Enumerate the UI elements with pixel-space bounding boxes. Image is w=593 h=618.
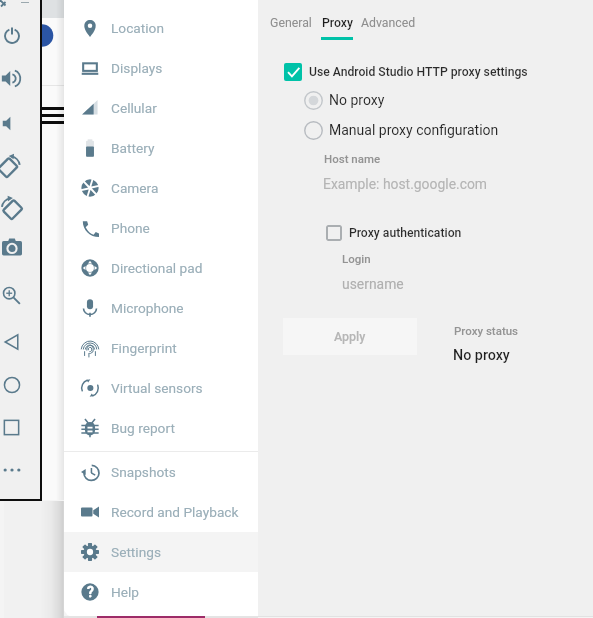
button[interactable]: Proxy — [322, 16, 354, 38]
staticText: Apply — [334, 329, 366, 344]
staticText: Proxy authentication — [349, 226, 462, 240]
button[interactable]: Volume up — [0, 62, 23, 94]
staticText: Proxy — [322, 16, 354, 30]
button[interactable]: Snapshots — [64, 452, 258, 492]
staticText: Fingerprint — [111, 340, 177, 356]
button[interactable]: ? — [64, 572, 258, 612]
staticText: General — [270, 16, 312, 30]
button[interactable]: Camera — [64, 168, 258, 208]
button[interactable]: Phone — [64, 208, 258, 248]
staticText: Virtual sensors — [111, 380, 203, 396]
staticText: Location — [111, 20, 164, 36]
button[interactable]: Settings — [64, 532, 258, 572]
button[interactable]: Virtual sensors — [64, 368, 258, 408]
button[interactable]: Take screenshot — [0, 231, 23, 263]
staticText: ? — [87, 584, 94, 600]
staticText: Microphone — [111, 300, 184, 316]
staticText: No proxy — [453, 347, 510, 364]
staticText: Phone — [111, 220, 150, 236]
button[interactable]: Volume down — [0, 107, 23, 139]
staticText: Advanced — [361, 16, 416, 30]
staticText: Host name — [324, 152, 381, 165]
staticText: Help — [111, 584, 140, 600]
staticText: Camera — [111, 180, 159, 196]
button[interactable]: Power — [0, 19, 23, 51]
staticText: username — [342, 276, 404, 292]
staticText: Login — [342, 252, 371, 265]
button[interactable]: Home — [0, 369, 23, 401]
staticText: Settings — [111, 544, 161, 560]
staticText: Use Android Studio HTTP proxy settings — [309, 65, 528, 79]
button[interactable]: Record and Playback — [64, 492, 258, 532]
button[interactable]: Apply — [283, 318, 417, 355]
staticText: Directional pad — [111, 260, 203, 276]
staticText: Battery — [111, 140, 155, 156]
staticText: Record and Playback — [111, 504, 239, 520]
staticText: Snapshots — [111, 464, 176, 480]
button[interactable]: Battery — [64, 128, 258, 168]
staticText: No proxy — [329, 92, 385, 108]
button[interactable]: No proxy — [304, 89, 385, 111]
staticText: Displays — [111, 60, 163, 76]
staticText: Proxy status — [454, 324, 519, 337]
button[interactable]: Overview — [0, 411, 23, 443]
button[interactable]: Fingerprint — [64, 328, 258, 368]
button[interactable]: Rotate left — [0, 149, 23, 181]
button[interactable]: Use Android Studio HTTP proxy settings — [284, 61, 528, 83]
button[interactable]: Zoom — [0, 279, 23, 311]
staticText: Example: host.google.com — [323, 176, 488, 192]
button[interactable]: Microphone — [64, 288, 258, 328]
staticText: Manual proxy configuration — [329, 122, 499, 138]
button[interactable]: More — [0, 454, 23, 486]
button[interactable]: Bug report — [64, 408, 258, 448]
button[interactable]: Manual proxy configuration — [304, 119, 499, 141]
button[interactable]: Cellular — [64, 88, 258, 128]
button[interactable]: General — [270, 16, 312, 38]
button[interactable]: Displays — [64, 48, 258, 88]
staticText: Cellular — [111, 100, 157, 116]
button[interactable]: Back — [0, 326, 23, 358]
button[interactable]: Proxy authentication — [326, 222, 462, 244]
staticText: Bug report — [111, 420, 175, 436]
button[interactable]: Rotate right — [0, 191, 23, 223]
button[interactable]: Advanced — [361, 16, 416, 38]
button[interactable]: Directional pad — [64, 248, 258, 288]
button[interactable]: Location — [64, 8, 258, 48]
